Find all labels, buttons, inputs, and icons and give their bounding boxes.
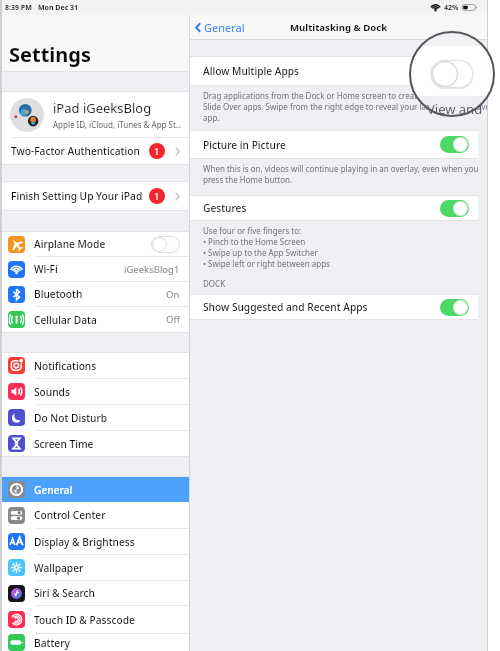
staticText: Notifications [34,359,97,373]
staticText: Mon Dec 31 [38,3,79,13]
staticText: Sounds [34,385,70,399]
button[interactable]: General [190,20,251,35]
staticText: Wi-Fi [34,262,58,276]
button[interactable]: Airplane Mode [2,232,189,256]
button[interactable]: Two-Factor Authentication [2,138,189,164]
staticText: Control Center [34,508,106,522]
button[interactable]: Toggle off [440,63,469,80]
staticText: Allow Multiple Apps [203,64,300,78]
button[interactable]: Wi-Fi [2,257,189,281]
staticText: Off [166,313,180,326]
button[interactable]: Wallpaper [2,555,189,580]
button[interactable]: Bluetooth [2,282,189,306]
staticText: Battery [34,636,70,650]
staticText: General [34,483,73,497]
staticText: Cellular Data [34,313,97,327]
staticText: Two-Factor Authentication [11,144,140,158]
staticText: Airplane Mode [34,237,106,251]
button[interactable]: Battery [2,634,189,651]
button[interactable]: Toggle off [151,236,180,253]
staticText: Bluetooth [34,287,83,301]
button[interactable]: Gestures [190,196,478,220]
button[interactable]: Notifications [2,353,189,378]
staticText: 42% [444,3,459,13]
staticText: Screen Time [34,437,94,451]
button[interactable]: Siri & Search [2,581,189,605]
button[interactable]: Cellular Data [2,307,189,332]
button[interactable]: Finish Setting Up Your iPad [2,182,189,210]
button[interactable]: Do Not Disturb [2,405,189,430]
button[interactable]: General [2,477,189,502]
staticText: View and [427,100,483,118]
button[interactable]: Touch ID & Passcode [2,606,189,633]
staticText: Finish Setting Up Your iPad [11,189,143,203]
staticText: When this is on, videos will continue pl… [203,163,479,185]
staticText: 8:39 PM [5,3,32,13]
staticText: Use four or five fingers to: • Pinch to … [203,225,330,269]
staticText: iPad iGeeksBlog [53,99,152,117]
button[interactable]: Picture in Picture [190,131,478,158]
button[interactable]: Control Center [2,502,189,528]
button[interactable]: Toggle on [440,136,469,153]
staticText: Display & Brightness [34,535,135,549]
staticText: Siri & Search [34,586,95,600]
staticText: General [204,20,245,35]
button[interactable]: Screen Time [2,431,189,456]
staticText: 1 [154,145,160,158]
staticText: Drag applications from the Dock or Home … [203,90,487,123]
button[interactable]: iPad iGeeksBlog [2,92,189,137]
staticText: On [166,288,180,301]
button[interactable]: Show Suggested and Recent Apps [190,295,478,319]
staticText: DOCK [203,278,226,289]
staticText: Touch ID & Passcode [34,613,135,627]
button[interactable]: Display & Brightness [2,529,189,554]
staticText: Do Not Disturb [34,411,108,425]
staticText: iGeeksBlog1 [124,263,180,276]
staticText: Apple ID, iCloud, iTunes & App St… [53,119,181,130]
button[interactable]: Sounds [2,379,189,404]
staticText: Multitasking & Dock [290,21,388,34]
staticText: Picture in Picture [203,138,286,152]
staticText: Show Suggested and Recent Apps [203,300,368,314]
button[interactable]: Allow Multiple Apps [190,57,478,85]
staticText: Wallpaper [34,561,84,575]
staticText: Gestures [203,201,247,215]
staticText: Settings [9,41,91,68]
button[interactable]: Toggle on [440,299,469,316]
staticText: 1 [154,190,160,203]
button[interactable]: Toggle on [440,200,469,217]
